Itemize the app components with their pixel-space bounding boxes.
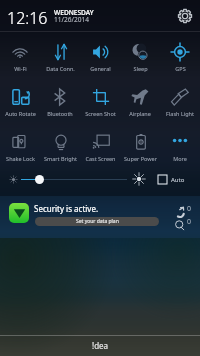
staticText: Data Conn. bbox=[46, 65, 75, 72]
staticText: General bbox=[90, 65, 111, 72]
staticText: Super Power bbox=[124, 155, 157, 162]
button[interactable]: Data Conn. bbox=[40, 32, 80, 77]
staticText: Smart Bright bbox=[44, 155, 77, 162]
staticText: 0 bbox=[187, 204, 192, 214]
staticText: Cast Screen bbox=[85, 155, 116, 162]
staticText: 11/26/2014 bbox=[54, 15, 90, 24]
button[interactable]: Security is active. bbox=[0, 194, 200, 236]
button[interactable]: Shake Lock bbox=[0, 122, 40, 167]
button[interactable]: Cast Screen bbox=[80, 122, 120, 167]
other: Missed calls bbox=[175, 207, 185, 217]
staticText: Screen Shot bbox=[85, 110, 116, 117]
button[interactable]: More bbox=[160, 122, 200, 167]
staticText: Set your data plan bbox=[76, 218, 119, 225]
button[interactable]: Wi-Fi bbox=[0, 32, 40, 77]
button[interactable]: Auto bbox=[156, 172, 187, 187]
button[interactable]: Super Power bbox=[120, 122, 160, 167]
button[interactable]: Brightness bbox=[21, 174, 127, 185]
button[interactable]: Screen Shot bbox=[80, 77, 120, 122]
staticText: GPS bbox=[175, 65, 186, 72]
button[interactable]: Auto Rotate bbox=[0, 77, 40, 122]
other: Messages bbox=[175, 220, 185, 230]
staticText: Wi-Fi bbox=[14, 65, 27, 72]
button[interactable]: Set your data plan bbox=[35, 217, 159, 226]
staticText: Security is active. bbox=[34, 203, 99, 214]
staticText: Sleep bbox=[133, 65, 148, 72]
button[interactable]: Smart Bright bbox=[40, 122, 80, 167]
button[interactable]: Flash Light bbox=[160, 77, 200, 122]
staticText: More bbox=[173, 155, 187, 162]
staticText: 12:16 bbox=[7, 7, 48, 29]
staticText: Flash Light bbox=[166, 110, 194, 117]
staticText: Auto bbox=[171, 176, 185, 184]
staticText: WEDNESDAY bbox=[54, 8, 94, 17]
button[interactable]: GPS bbox=[160, 32, 200, 77]
button[interactable]: Airplane bbox=[120, 77, 160, 122]
button[interactable]: General bbox=[80, 32, 120, 77]
staticText: 0 bbox=[187, 217, 192, 227]
staticText: Shake Lock bbox=[6, 155, 35, 162]
staticText: Auto Rotate bbox=[5, 110, 36, 117]
button[interactable]: Settings bbox=[174, 5, 196, 27]
staticText: Airplane bbox=[129, 110, 151, 117]
staticText: Bluetooth bbox=[47, 110, 73, 117]
button[interactable]: Sleep bbox=[120, 32, 160, 77]
button[interactable]: Bluetooth bbox=[40, 77, 80, 122]
staticText: !dea bbox=[92, 340, 109, 351]
